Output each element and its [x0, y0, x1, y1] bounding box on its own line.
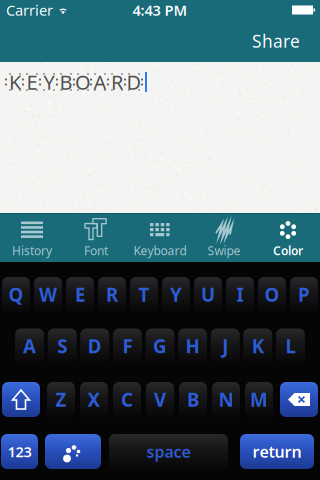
button[interactable]: Swipe [192, 214, 256, 262]
staticText: Carrier [6, 0, 53, 20]
button[interactable]: return [240, 434, 314, 469]
staticText: P [298, 282, 310, 307]
staticText: G [153, 334, 167, 358]
staticText: 123 [7, 442, 31, 461]
staticText: History [12, 242, 52, 258]
button[interactable]: A [15, 328, 44, 363]
staticText: R [106, 282, 118, 307]
staticText: T [138, 282, 149, 307]
button[interactable]: H [178, 328, 207, 363]
staticText: I [236, 282, 243, 307]
staticText: J [222, 334, 228, 358]
button[interactable]: Themes [45, 434, 101, 469]
staticText: Font [84, 242, 108, 258]
button[interactable]: W [34, 277, 62, 312]
staticText: Keyboard [133, 242, 186, 258]
staticText: Color [273, 242, 303, 258]
button[interactable]: X [80, 382, 108, 417]
staticText: K [252, 334, 264, 358]
staticText: R [111, 69, 123, 95]
button[interactable]: U [194, 277, 222, 312]
button[interactable]: N [212, 382, 240, 417]
button[interactable]: O [258, 277, 286, 312]
button[interactable]: Color [256, 214, 320, 262]
button[interactable]: Share [252, 29, 320, 52]
staticText: E [75, 282, 85, 307]
button[interactable]: D [80, 328, 109, 363]
staticText: B [187, 387, 199, 412]
button[interactable]: J [211, 328, 240, 363]
staticText: D [126, 69, 141, 95]
staticText: S [57, 334, 67, 358]
button[interactable]: C [113, 382, 141, 417]
button[interactable]: I [226, 277, 254, 312]
button[interactable]: B [179, 382, 207, 417]
staticText: N [218, 387, 233, 412]
button[interactable]: History [0, 214, 64, 262]
button[interactable]: E [66, 277, 94, 312]
staticText: X [87, 387, 100, 412]
button[interactable]: F [113, 328, 142, 363]
button[interactable]: Delete [280, 382, 318, 417]
staticText: E [26, 69, 37, 95]
staticText: return [252, 441, 301, 462]
staticText: Share [252, 29, 300, 52]
button[interactable]: Font [64, 214, 128, 262]
button[interactable]: S [48, 328, 77, 363]
button[interactable]: K [243, 328, 272, 363]
staticText: H [186, 334, 200, 358]
staticText: space [146, 441, 190, 462]
button[interactable]: R [98, 277, 126, 312]
button[interactable]: M [245, 382, 273, 417]
button[interactable]: 123 [1, 434, 38, 469]
button[interactable]: Y [162, 277, 190, 312]
staticText: U [201, 282, 215, 307]
staticText: M [250, 387, 268, 412]
button[interactable]: Keyboard [128, 214, 192, 262]
staticText: O [75, 69, 91, 95]
staticText: Q [8, 282, 23, 307]
staticText: A [93, 69, 106, 95]
staticText: A [23, 334, 36, 358]
button[interactable]: V [146, 382, 174, 417]
staticText: B [59, 69, 72, 95]
staticText: V [154, 387, 166, 412]
button[interactable]: P [290, 277, 318, 312]
button[interactable]: L [276, 328, 305, 363]
button[interactable]: Q [2, 277, 30, 312]
staticText: F [122, 334, 132, 358]
button[interactable]: space [109, 434, 228, 469]
staticText: Y [170, 282, 182, 307]
button[interactable]: G [145, 328, 174, 363]
staticText: W [39, 282, 57, 307]
button[interactable]: Shift [2, 382, 40, 417]
staticText: Y [43, 69, 54, 95]
staticText: 4:43 PM [132, 0, 187, 20]
staticText: K [9, 69, 21, 95]
staticText: C [121, 387, 133, 412]
button[interactable]: T [130, 277, 158, 312]
staticText: D [88, 334, 102, 358]
button[interactable]: Z [47, 382, 75, 417]
staticText: Swipe [207, 242, 240, 258]
staticText: L [285, 334, 295, 358]
staticText: O [264, 282, 279, 307]
staticText: Z [55, 387, 66, 412]
